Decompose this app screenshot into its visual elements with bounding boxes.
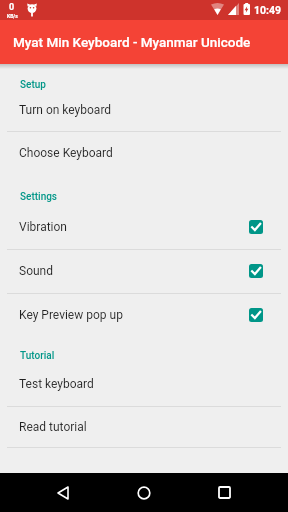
staticText: 10:49 [254,4,282,16]
button[interactable]: Test keyboard [0,361,288,406]
staticText: Key Preview pop up [19,308,123,322]
button[interactable] [39,473,87,512]
button[interactable]: Key Preview pop up [0,293,288,337]
staticText: Myat Min Keyboard - Myanmar Unicode [13,34,251,50]
button[interactable]: Read tutorial [0,406,288,447]
staticText: Settings [20,191,58,203]
staticText: Turn on keyboard [19,103,112,117]
staticText: Read tutorial [19,420,87,434]
button[interactable] [200,473,248,512]
staticText: Setup [20,79,46,91]
staticText: Choose Keyboard [19,146,113,160]
staticText: Tutorial [20,350,55,362]
staticText: Sound [19,264,53,278]
button[interactable]: Vibration [0,205,288,249]
button[interactable]: Sound [0,249,288,293]
staticText: KB/s [7,13,18,19]
staticText: 0 [9,2,15,13]
button[interactable]: Turn on keyboard [0,88,288,131]
staticText: Test keyboard [19,377,94,391]
staticText: Vibration [19,220,67,234]
button[interactable]: Choose Keyboard [0,131,288,175]
button[interactable] [120,473,168,512]
